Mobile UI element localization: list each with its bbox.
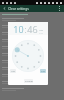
staticText: CANCEL — [25, 80, 33, 83]
staticText: : — [24, 23, 27, 35]
button[interactable]: Back — [2, 6, 7, 11]
button[interactable]: AM — [10, 69, 16, 73]
staticText: PM — [39, 31, 43, 34]
staticText: PM — [41, 70, 45, 73]
staticText: 46 — [27, 23, 38, 35]
button[interactable]: PM — [40, 69, 46, 73]
staticText: 10 — [13, 23, 24, 35]
staticText: AM — [11, 70, 15, 73]
button[interactable]: CANCEL — [24, 79, 33, 83]
staticText: AM — [39, 28, 43, 31]
button[interactable]: More options — [57, 6, 62, 11]
staticText: Clear settings — [8, 7, 29, 11]
